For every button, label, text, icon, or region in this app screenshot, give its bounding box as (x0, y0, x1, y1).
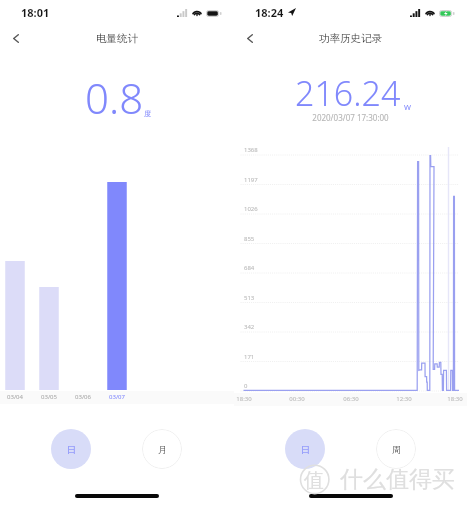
staticText: 03/07 (103, 393, 131, 401)
staticText: W (404, 102, 411, 112)
staticText: 18:30 (441, 395, 467, 403)
staticText: 周 (392, 444, 401, 455)
staticText: 342 (244, 323, 255, 331)
button[interactable]: 周 (376, 429, 416, 469)
staticText: 0.8 (85, 69, 144, 126)
staticText: 值 (304, 468, 324, 493)
staticText: 什么值得买 (340, 465, 455, 494)
staticText: 00:30 (283, 395, 311, 403)
button[interactable]: Back (4, 26, 28, 50)
staticText: 度 (144, 109, 151, 118)
staticText: 684 (244, 264, 255, 272)
staticText: 1026 (244, 205, 258, 213)
staticText: 12:30 (390, 395, 418, 403)
staticText: 171 (244, 353, 255, 361)
staticText: 18:24 (255, 5, 284, 20)
staticText: 855 (244, 235, 255, 243)
staticText: 2020/03/07 17:30:00 (312, 112, 389, 123)
staticText: 513 (244, 294, 255, 302)
staticText: 1368 (244, 146, 258, 154)
staticText: 18:30 (230, 395, 258, 403)
button[interactable]: 日 (51, 429, 91, 469)
staticText: 功率历史记录 (319, 32, 382, 45)
staticText: 18:01 (21, 5, 50, 20)
staticText: 日 (67, 444, 76, 455)
staticText: 电量统计 (96, 32, 138, 45)
staticText: 216.24 (295, 70, 401, 116)
staticText: 1197 (244, 176, 258, 184)
staticText: 06:30 (337, 395, 365, 403)
staticText: 0 (244, 382, 248, 390)
staticText: 03/05 (35, 393, 63, 401)
button[interactable]: 月 (142, 429, 182, 469)
button[interactable]: Back (238, 26, 262, 50)
staticText: 03/04 (1, 393, 29, 401)
staticText: 03/06 (69, 393, 97, 401)
button[interactable]: 日 (285, 429, 325, 469)
staticText: 日 (301, 444, 310, 455)
staticText: 月 (158, 444, 167, 455)
